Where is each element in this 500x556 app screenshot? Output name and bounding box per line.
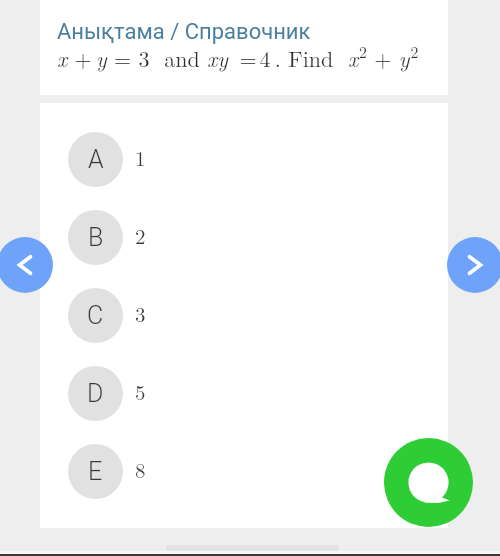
staticText: 2 (135, 220, 146, 250)
staticText: 5 (135, 376, 146, 406)
staticText: E (88, 457, 103, 486)
staticText: x + y = 3 and xy = 4 . Find x 2 + y 2 (57, 40, 419, 73)
staticText: D (87, 379, 104, 408)
staticText: 1 (135, 142, 146, 172)
button[interactable]: C (40, 276, 448, 354)
button[interactable]: D (40, 354, 448, 432)
staticText: C (87, 301, 104, 330)
staticText: B (88, 223, 104, 252)
staticText: 3 (135, 298, 146, 328)
button[interactable]: Next question (447, 237, 500, 293)
button[interactable]: B (40, 198, 448, 276)
staticText: 8 (135, 454, 146, 484)
button[interactable]: A (40, 120, 448, 198)
staticText: Анықтама / Справочник (57, 19, 311, 45)
staticText: A (88, 145, 104, 174)
button[interactable]: Previous question (0, 237, 53, 293)
button[interactable]: Open chat (384, 438, 473, 527)
button[interactable]: E (40, 432, 448, 510)
